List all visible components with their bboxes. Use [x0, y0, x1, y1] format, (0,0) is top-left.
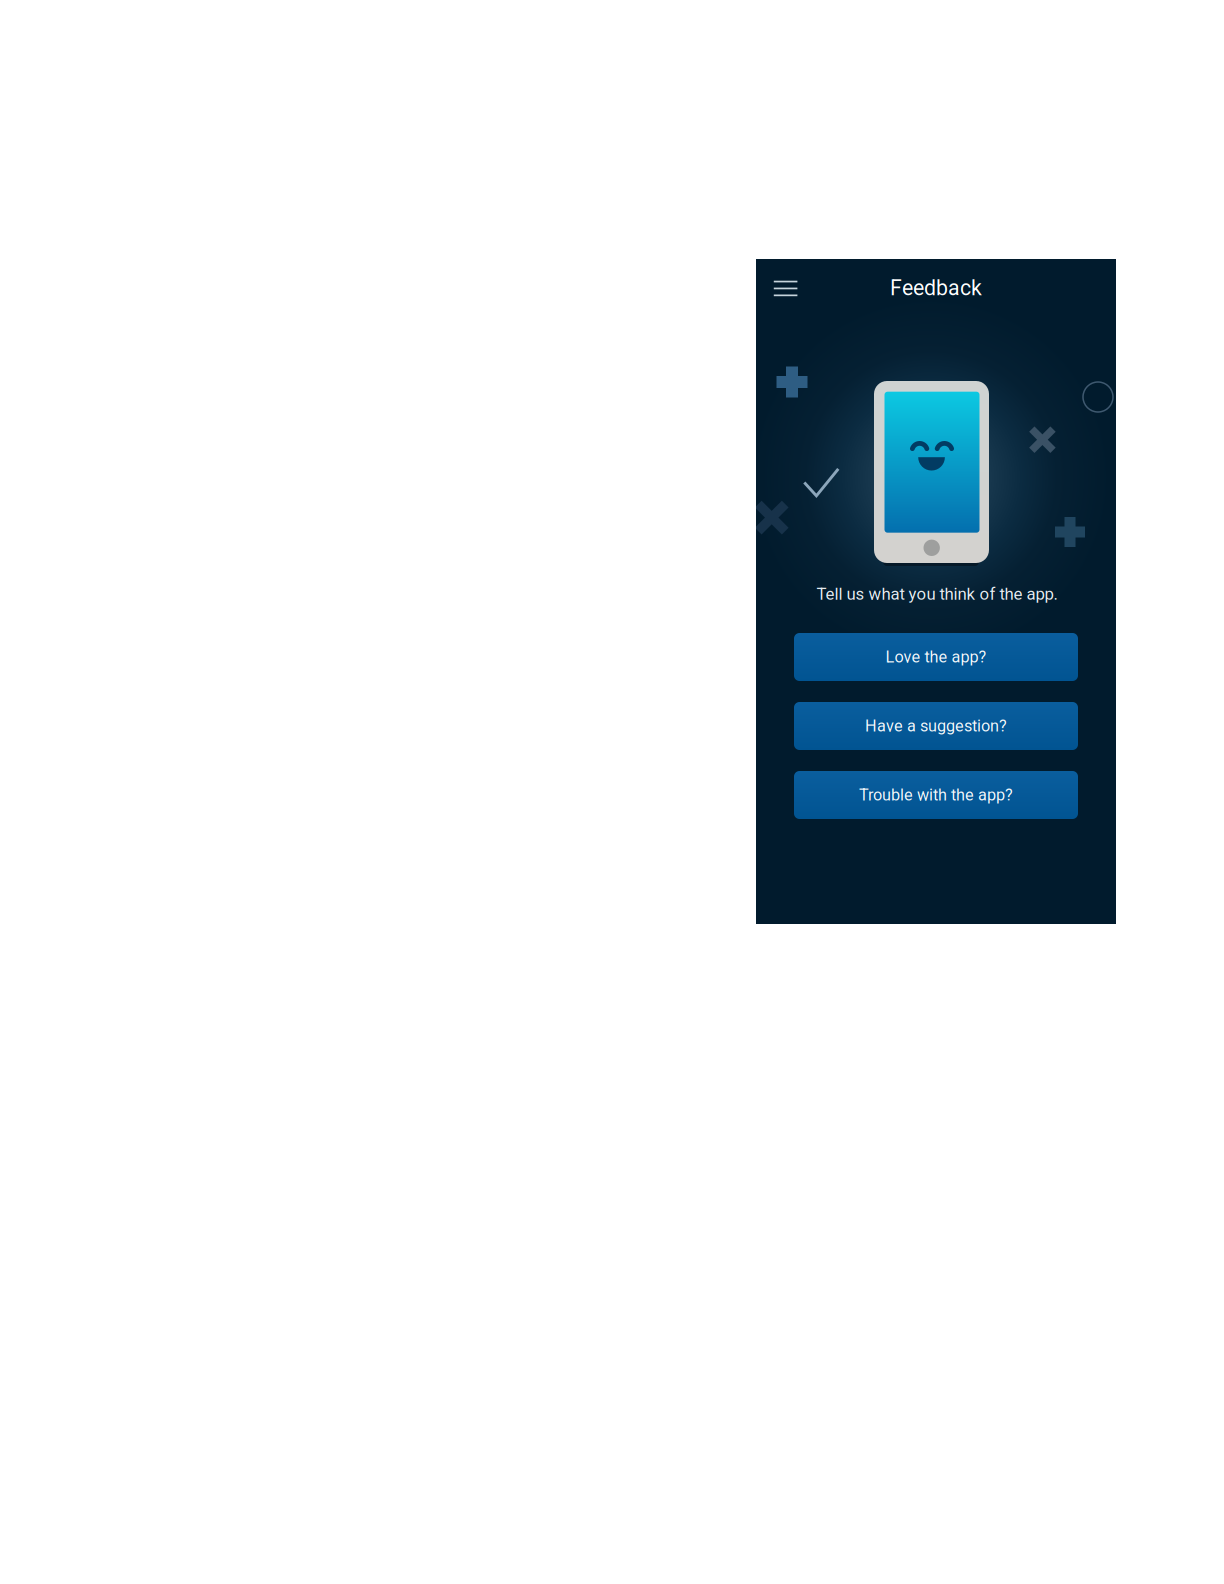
- staticText: Feedback: [890, 275, 982, 300]
- staticText: Love the app?: [885, 647, 986, 667]
- button[interactable]: Have a suggestion?: [794, 702, 1078, 750]
- button[interactable]: Trouble with the app?: [794, 771, 1078, 819]
- staticText: Have a suggestion?: [865, 716, 1007, 736]
- button[interactable]: Menu: [756, 265, 802, 311]
- staticText: Tell us what you think of the app.: [816, 584, 1057, 604]
- button[interactable]: Love the app?: [794, 633, 1078, 681]
- staticText: Trouble with the app?: [859, 785, 1013, 805]
